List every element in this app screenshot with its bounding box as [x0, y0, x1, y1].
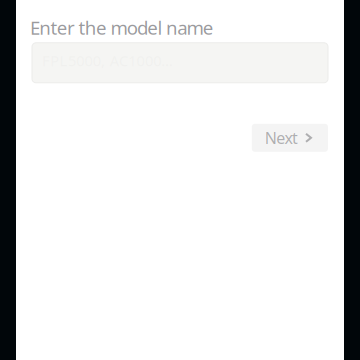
staticText: Enter the model name: [30, 15, 214, 40]
button[interactable]: Next: [252, 124, 328, 152]
staticText: Next: [265, 127, 298, 148]
